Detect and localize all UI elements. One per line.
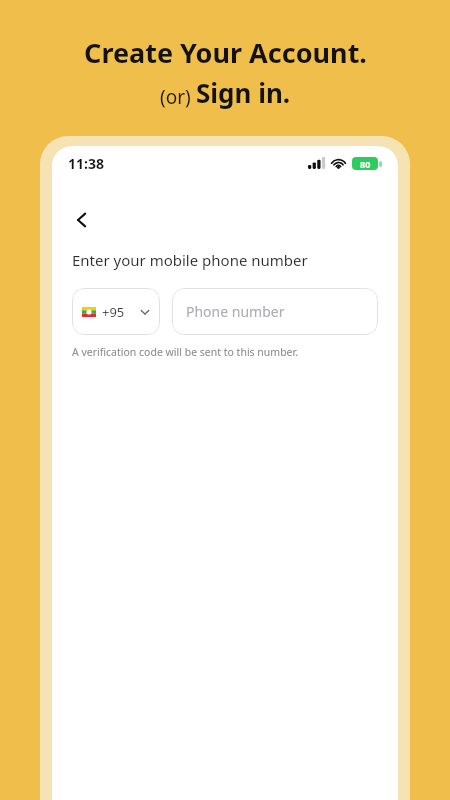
staticText: Phone number [186, 302, 285, 321]
button[interactable]: +95 [72, 288, 160, 335]
staticText: (or) [160, 84, 196, 110]
staticText: 11:38 [68, 154, 104, 173]
staticText: Create Your Account. [84, 34, 367, 71]
staticText: 80 [360, 158, 371, 170]
staticText: Enter your mobile phone number [72, 250, 308, 270]
staticText: A verification code will be sent to this… [72, 345, 299, 359]
button[interactable]: Back [60, 198, 104, 242]
button[interactable]: Phone number [172, 288, 378, 335]
staticText: +95 [102, 303, 125, 321]
staticText: Sign in. [196, 75, 291, 110]
